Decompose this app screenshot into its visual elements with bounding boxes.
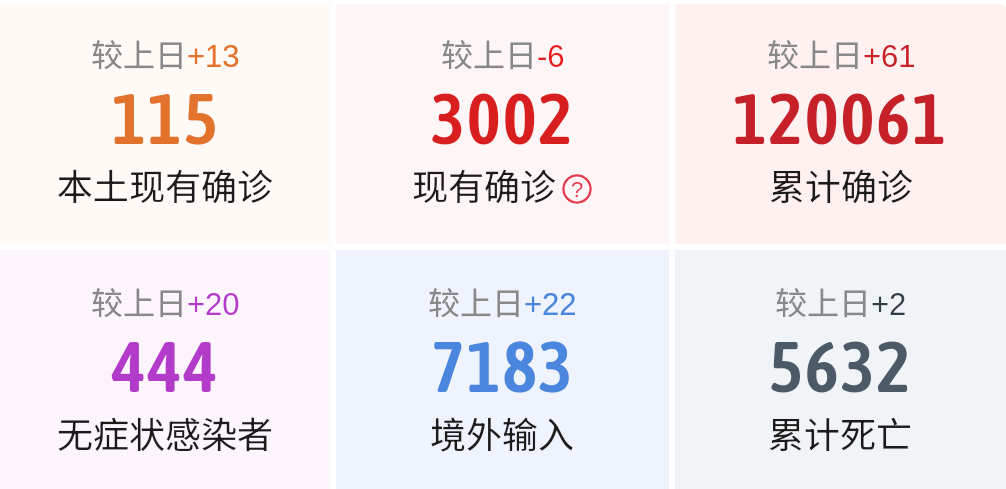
staticText: 境外输入 [430, 406, 575, 458]
button[interactable]: 较上日+22 [336, 250, 669, 489]
staticText: 115 [112, 77, 220, 160]
staticText: 较上日+22 [428, 278, 577, 324]
staticText: 120061 [733, 77, 949, 160]
button[interactable]: 较上日-6 [336, 4, 669, 244]
staticText: 较上日+61 [767, 30, 916, 76]
staticText: 7183 [431, 325, 575, 408]
staticText: 较上日-6 [441, 30, 565, 76]
button[interactable]: 较上日+20 [0, 250, 330, 489]
button[interactable]: 说明 [562, 174, 592, 204]
staticText: 5632 [769, 325, 913, 408]
staticText: 累计确诊 [769, 158, 914, 210]
button[interactable]: 较上日+2 [675, 250, 1006, 489]
button[interactable]: 较上日+61 [675, 4, 1006, 244]
button[interactable]: 较上日+13 [0, 4, 330, 244]
staticText: 较上日+2 [775, 278, 907, 324]
staticText: 444 [112, 325, 220, 408]
staticText: 较上日+20 [91, 278, 240, 324]
staticText: 现有确诊 [412, 158, 557, 210]
staticText: 无症状感染者 [57, 406, 274, 458]
staticText: 较上日+13 [91, 30, 240, 76]
staticText: 3002 [431, 77, 575, 160]
staticText: 累计死亡 [768, 406, 913, 458]
staticText: ? [571, 177, 584, 202]
staticText: 本土现有确诊 [57, 158, 274, 210]
